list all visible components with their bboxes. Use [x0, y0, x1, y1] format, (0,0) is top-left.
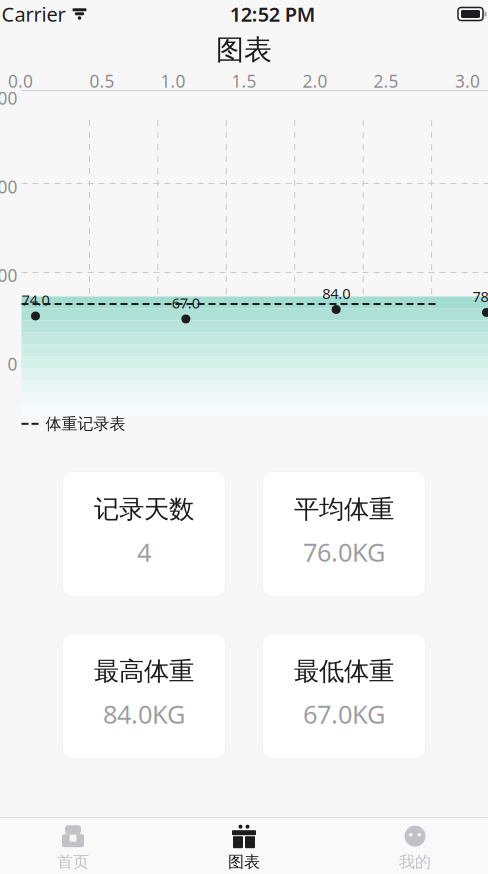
staticText: 图表 [228, 852, 260, 872]
staticText: 78.0 [472, 286, 488, 306]
staticText: 12:52 PM [230, 1, 316, 27]
staticText: 67.0KG [303, 697, 385, 731]
staticText: 74.0 [21, 290, 49, 309]
staticText: Carrier [1, 1, 65, 27]
staticText: 84.0KG [103, 697, 185, 731]
button[interactable]: 记录天数 [62, 472, 225, 597]
button[interactable]: 平均体重 [262, 472, 425, 597]
staticText: 0.5 [89, 69, 114, 92]
staticText: 4 [137, 535, 151, 569]
staticText: 76.0KG [303, 535, 385, 569]
staticText: 0 [7, 352, 17, 375]
staticText: 最高体重 [94, 656, 194, 687]
staticText: 首页 [57, 852, 89, 872]
staticText: 200 [0, 175, 17, 198]
button[interactable]: 最低体重 [262, 634, 425, 759]
button[interactable]: 首页 [0, 822, 158, 874]
staticText: 0.0 [8, 69, 33, 92]
staticText: 3.0 [455, 69, 480, 92]
staticText: 2.5 [373, 69, 398, 92]
staticText: 图表 [216, 33, 272, 67]
button[interactable]: 最高体重 [62, 634, 225, 759]
staticText: 平均体重 [294, 494, 394, 525]
staticText: 1.0 [160, 69, 185, 92]
staticText: 84.0 [322, 283, 350, 303]
staticText: 67.0 [172, 293, 200, 312]
button[interactable]: 我的 [329, 822, 488, 874]
staticText: 体重记录表 [45, 414, 125, 434]
staticText: 我的 [399, 852, 431, 872]
staticText: 300 [0, 86, 17, 109]
staticText: 最低体重 [294, 656, 394, 687]
staticText: 100 [0, 264, 17, 287]
staticText: 记录天数 [94, 494, 194, 525]
button[interactable]: 图表 [158, 822, 329, 874]
staticText: 1.5 [231, 69, 256, 92]
staticText: 2.0 [302, 69, 327, 92]
